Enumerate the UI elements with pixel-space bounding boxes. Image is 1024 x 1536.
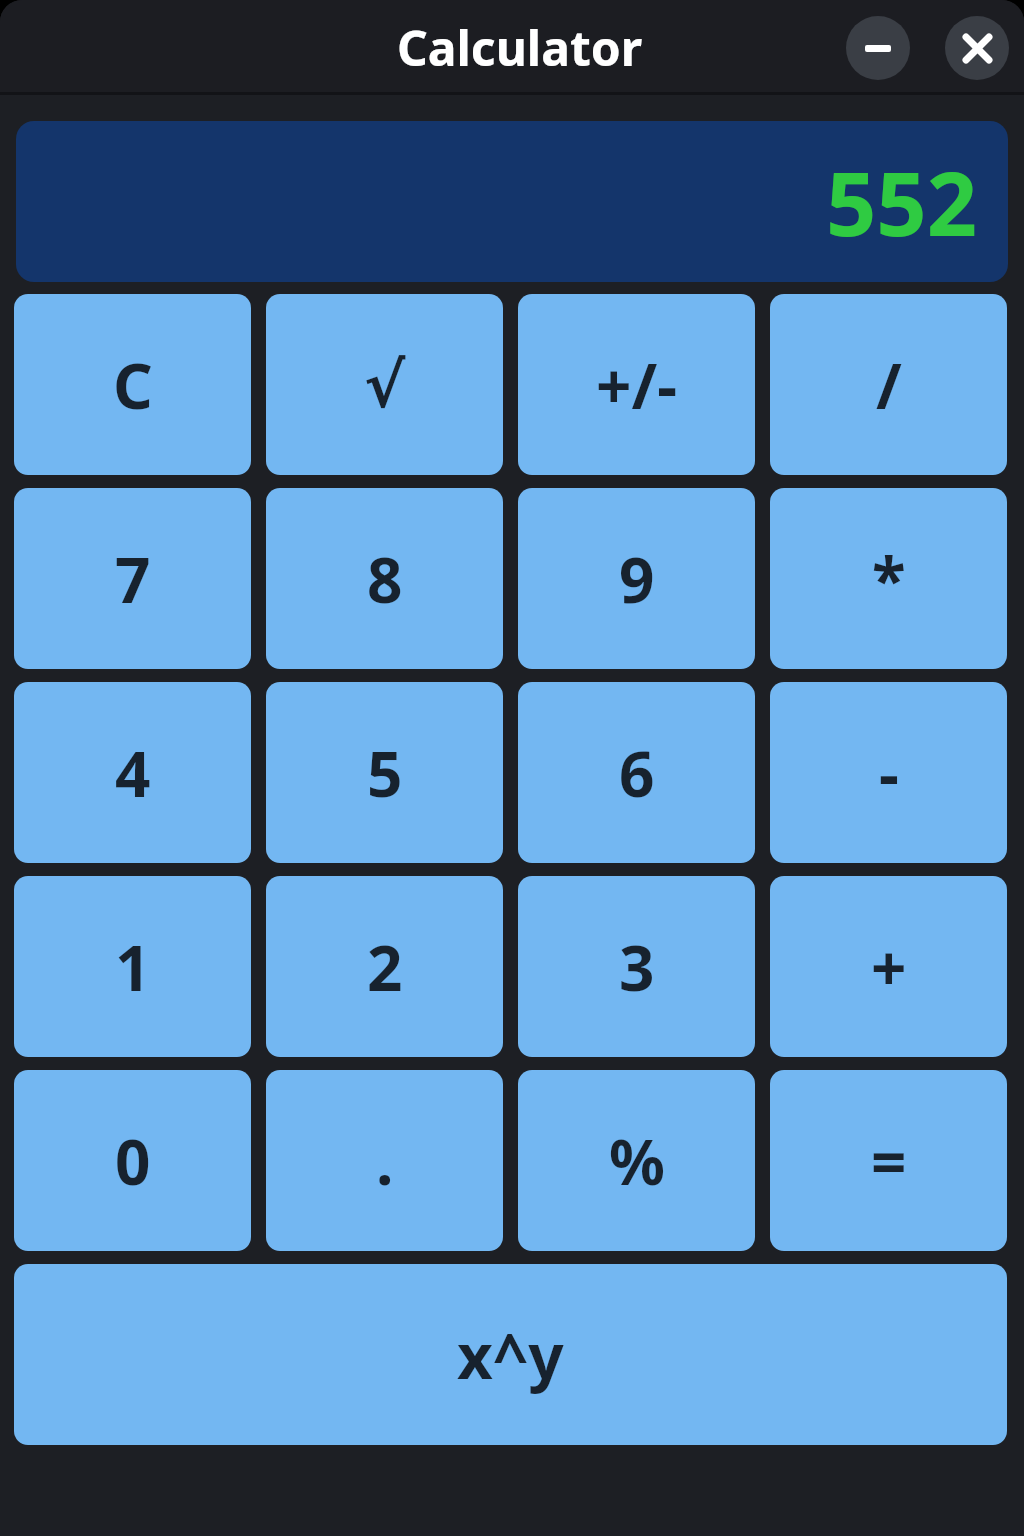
staticText: + — [871, 925, 907, 1009]
button[interactable] — [945, 16, 1009, 80]
staticText: +/- — [596, 343, 678, 427]
button[interactable]: + — [770, 876, 1007, 1057]
button[interactable]: 3 — [518, 876, 755, 1057]
staticText: * — [872, 537, 906, 621]
button[interactable]: √ — [266, 294, 503, 475]
button[interactable]: 0 — [14, 1070, 251, 1251]
staticText: √ — [364, 349, 406, 421]
staticText: x^y — [457, 1313, 564, 1397]
button[interactable] — [846, 16, 910, 80]
button[interactable]: / — [770, 294, 1007, 475]
staticText: = — [871, 1119, 907, 1203]
staticText: C — [113, 343, 153, 427]
staticText: Calculator — [397, 15, 643, 80]
button[interactable]: 4 — [14, 682, 251, 863]
staticText: 6 — [619, 731, 655, 815]
button[interactable]: 6 — [518, 682, 755, 863]
staticText: 5 — [367, 731, 403, 815]
button[interactable]: - — [770, 682, 1007, 863]
staticText: 3 — [619, 925, 655, 1009]
staticText: 4 — [115, 731, 151, 815]
staticText: 9 — [619, 537, 655, 621]
staticText: 7 — [115, 537, 151, 621]
button[interactable]: +/- — [518, 294, 755, 475]
staticText: - — [879, 731, 899, 815]
button[interactable]: 8 — [266, 488, 503, 669]
button[interactable]: 5 — [266, 682, 503, 863]
staticText: 8 — [367, 537, 403, 621]
button[interactable]: 1 — [14, 876, 251, 1057]
staticText: 2 — [367, 925, 403, 1009]
button[interactable]: 9 — [518, 488, 755, 669]
staticText: 552 — [826, 142, 978, 262]
staticText: 1 — [115, 925, 151, 1009]
button[interactable]: C — [14, 294, 251, 475]
button[interactable]: 7 — [14, 488, 251, 669]
button[interactable]: = — [770, 1070, 1007, 1251]
button[interactable]: % — [518, 1070, 755, 1251]
button[interactable]: x^y — [14, 1264, 1007, 1445]
button[interactable]: * — [770, 488, 1007, 669]
button[interactable]: . — [266, 1070, 503, 1251]
staticText: 0 — [115, 1119, 151, 1203]
staticText: % — [609, 1119, 665, 1203]
staticText: / — [876, 343, 902, 427]
staticText: . — [376, 1119, 394, 1203]
button[interactable]: 2 — [266, 876, 503, 1057]
